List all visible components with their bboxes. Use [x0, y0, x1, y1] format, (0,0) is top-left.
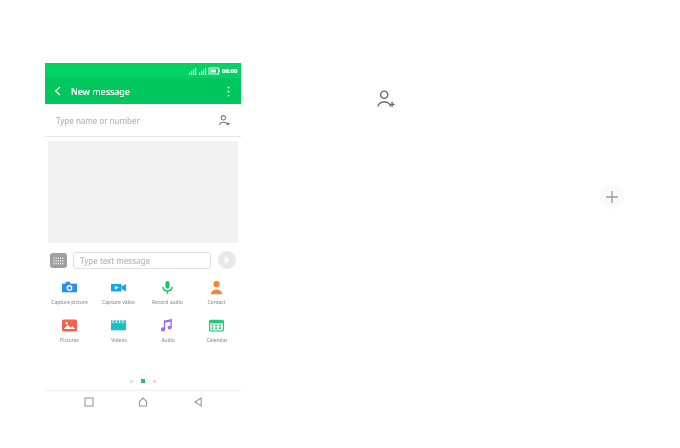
- button[interactable]: Pictures: [45, 315, 94, 347]
- button[interactable]: Videos: [94, 315, 143, 347]
- button[interactable]: Keyboard: [50, 253, 67, 268]
- button[interactable]: Add recipient from contacts: [215, 111, 233, 129]
- button[interactable]: Add: [600, 185, 624, 209]
- button[interactable]: Back: [187, 391, 209, 413]
- button[interactable]: Back: [45, 78, 241, 104]
- button[interactable]: Home: [132, 391, 154, 413]
- button[interactable]: Type text message: [73, 252, 211, 269]
- button[interactable]: Audio: [143, 315, 192, 347]
- button[interactable]: More options: [219, 82, 237, 100]
- button[interactable]: Calendar: [192, 315, 241, 347]
- button[interactable]: Capture picture: [45, 277, 94, 309]
- button[interactable]: Type name or number: [45, 104, 241, 136]
- staticText: Pictures: [60, 337, 79, 344]
- staticText: Calendar: [206, 337, 228, 344]
- staticText: Capture video: [102, 299, 135, 306]
- staticText: 08:00: [222, 67, 238, 75]
- staticText: Audio: [161, 337, 175, 344]
- staticText: Record audio: [152, 299, 183, 306]
- button[interactable]: Capture video: [94, 277, 143, 309]
- staticText: Type text message: [80, 255, 150, 266]
- button[interactable]: Recent apps: [78, 391, 100, 413]
- button[interactable]: Send: [218, 251, 236, 269]
- button[interactable]: Add contact: [375, 88, 397, 110]
- staticText: Contact: [207, 299, 226, 306]
- staticText: Videos: [111, 337, 127, 344]
- staticText: Capture picture: [51, 299, 88, 306]
- staticText: Type name or number: [56, 115, 140, 126]
- button[interactable]: Contact: [192, 277, 241, 309]
- staticText: New message: [71, 85, 130, 97]
- button[interactable]: Record audio: [143, 277, 192, 309]
- button[interactable]: Back: [49, 82, 67, 100]
